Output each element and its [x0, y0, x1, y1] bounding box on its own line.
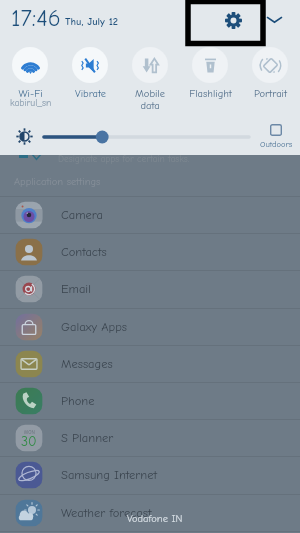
staticText: Wi-Fi — [18, 88, 43, 100]
button[interactable]: MON — [0, 419, 300, 456]
staticText: 30 — [21, 433, 37, 449]
staticText: S Planner — [61, 431, 114, 445]
button[interactable]: Portrait — [240, 42, 300, 112]
button[interactable]: Designate apps for certain tasks. — [0, 0, 300, 196]
staticText: Application settings — [14, 176, 101, 188]
staticText: Portrait — [254, 88, 287, 100]
button[interactable]: Expand quick settings — [264, 9, 285, 30]
button[interactable]: Brightness — [0, 129, 300, 145]
staticText: Vibrate — [75, 88, 106, 100]
staticText: Phone — [61, 394, 95, 408]
staticText: Outdoors — [260, 139, 293, 149]
staticText: MON — [24, 429, 35, 435]
staticText: Mobile data — [135, 88, 165, 111]
staticText: Designate apps for certain tasks. — [58, 153, 190, 164]
staticText: Weather forecast — [61, 506, 152, 520]
staticText: Contacts — [61, 245, 107, 259]
staticText: Camera — [61, 208, 103, 222]
staticText: Messages — [61, 357, 113, 371]
staticText: Vodafone IN — [127, 513, 183, 525]
button[interactable]: Phone — [0, 382, 300, 419]
button[interactable]: Email — [0, 270, 300, 307]
button[interactable]: Samsung Internet — [0, 456, 300, 493]
button[interactable]: Messages — [0, 345, 300, 382]
button[interactable]: Outdoors — [256, 124, 296, 149]
staticText: Thu, July 12 — [65, 16, 118, 28]
staticText: kabirul_sn — [10, 97, 52, 108]
staticText: 17:46 — [11, 4, 61, 32]
staticText: Samsung Internet — [61, 468, 157, 482]
button[interactable]: Weather forecast — [0, 494, 300, 531]
button[interactable]: Mobile data — [120, 42, 180, 112]
staticText: Email — [61, 282, 91, 296]
button[interactable]: Contacts — [0, 233, 300, 270]
button[interactable]: Galaxy Apps — [0, 308, 300, 345]
button[interactable]: Flashlight — [180, 42, 240, 112]
button[interactable]: Wi-Fi — [0, 42, 60, 112]
button[interactable]: Camera — [0, 196, 300, 233]
button[interactable]: Vibrate — [60, 42, 120, 112]
staticText: Galaxy Apps — [61, 320, 127, 334]
button[interactable]: Settings — [223, 10, 243, 30]
staticText: Flashlight — [189, 88, 232, 100]
